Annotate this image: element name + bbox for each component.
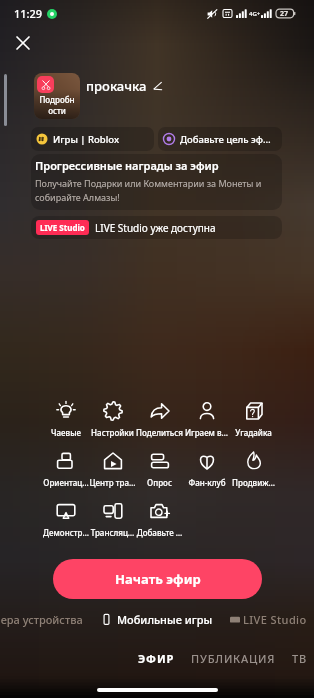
staticText: Начать эфир	[115, 570, 201, 588]
staticText: Ориентация	[43, 477, 89, 488]
button[interactable]: ЭФИР	[138, 651, 175, 666]
button[interactable]: ПУБЛИКАЦИЯ	[191, 651, 276, 666]
button[interactable]: Центр тран…	[89, 451, 136, 488]
button[interactable]: Трансляция…	[89, 501, 136, 538]
staticText: 27	[280, 9, 289, 19]
button[interactable]: Опрос	[136, 451, 183, 488]
staticText: прокачка	[86, 77, 147, 95]
staticText: LIVE Studio	[40, 222, 85, 233]
button[interactable]: Прогрессивные награды за эфир	[31, 154, 282, 210]
button[interactable]: Мобильные игры	[101, 612, 213, 627]
staticText: LIVE Studio уже доступна	[95, 221, 216, 235]
staticText: Трансляция…	[89, 527, 136, 538]
staticText: Получайте Подарки или Комментарии за Мон…	[35, 177, 274, 204]
button[interactable]: Настройки	[89, 401, 136, 438]
staticText: 4G+	[249, 10, 261, 18]
staticText: Настройки	[91, 427, 134, 438]
button[interactable]: Угадайка	[230, 401, 277, 438]
staticText: Угадайка	[235, 427, 272, 438]
staticText: Добавьте цель эф…	[180, 133, 271, 146]
button[interactable]: Ориентация	[43, 451, 89, 488]
button[interactable]: Поделиться	[136, 401, 183, 438]
staticText: Чаевые	[51, 427, 81, 438]
staticText: Опрос	[147, 477, 172, 488]
button[interactable]: Продвижен…	[230, 451, 277, 488]
button[interactable]: Фан-клуб	[183, 451, 230, 488]
staticText: Поделиться	[136, 427, 183, 438]
button[interactable]: Начать эфир	[53, 559, 262, 599]
staticText: LIVE Studio	[243, 612, 307, 627]
button[interactable]: Добавьте к…	[136, 501, 183, 538]
button[interactable]: Подробн ости	[34, 73, 80, 119]
button[interactable]: LIVE Studio	[31, 216, 282, 239]
staticText: 11:29	[14, 6, 43, 21]
staticText: Подробн ости	[39, 94, 75, 116]
button[interactable]: Close	[10, 30, 35, 55]
button[interactable]: мера устройства	[0, 612, 83, 627]
staticText: Продвижен…	[230, 477, 277, 488]
staticText: Прогрессивные награды за эфир	[35, 158, 219, 173]
staticText: Игры | Roblox	[53, 133, 120, 146]
staticText: Центр тран…	[89, 477, 136, 488]
button[interactable]: LIVE Studio	[230, 612, 307, 627]
button[interactable]: Игры | Roblox	[31, 127, 154, 151]
staticText: Демонстри…	[43, 527, 89, 538]
button[interactable]: ТВ	[292, 651, 307, 666]
staticText: Играем вме…	[183, 427, 230, 438]
button[interactable]: Играем вме…	[183, 401, 230, 438]
staticText: Фан-клуб	[188, 477, 226, 488]
staticText: Добавьте к…	[136, 527, 183, 538]
button[interactable]: Демонстри…	[43, 501, 89, 538]
staticText: Мобильные игры	[117, 612, 213, 627]
button[interactable]: Чаевые	[43, 401, 89, 438]
other: Edit	[152, 81, 163, 92]
button[interactable]: Добавьте цель эф…	[158, 127, 282, 151]
